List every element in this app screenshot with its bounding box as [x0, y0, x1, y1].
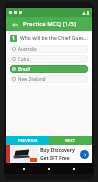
staticText: Get IFT Free: [40, 155, 70, 162]
button[interactable]: New Zealand: [10, 75, 88, 83]
button[interactable]: PREVIOUS: [6, 136, 49, 145]
staticText: Brazil: [18, 66, 30, 72]
button[interactable]: Recent apps: [70, 165, 78, 173]
staticText: Practice MCQ [1/5]: [23, 20, 76, 28]
button[interactable]: Navigate up: [9, 19, 20, 30]
staticText: Who will be the Chief Guest of: [20, 35, 88, 42]
staticText: PREVIOUS: [18, 138, 38, 143]
button[interactable]: Home: [45, 165, 53, 173]
staticText: Australia: [18, 46, 37, 52]
staticText: New Zealand: [18, 76, 46, 82]
button[interactable]: Cuba: [10, 55, 88, 63]
button[interactable]: NEXT: [49, 136, 92, 145]
staticText: Buy Discovery: [40, 147, 75, 154]
staticText: NEXT: [65, 138, 76, 143]
staticText: 1: [12, 35, 15, 42]
button[interactable]: Back: [20, 165, 28, 173]
button[interactable]: Australia: [10, 45, 88, 53]
staticText: Cuba: [18, 56, 29, 62]
button[interactable]: Advertisement: [6, 145, 92, 163]
button[interactable]: Open ad: [80, 150, 89, 159]
button[interactable]: Brazil: [10, 65, 88, 73]
